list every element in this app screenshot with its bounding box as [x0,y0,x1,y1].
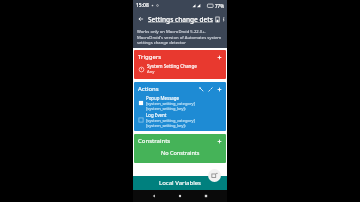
button[interactable]: Back [149,191,159,201]
button[interactable]: Save [213,15,222,24]
button[interactable]: List [223,15,224,24]
staticText: [system_setting_category] [146,101,195,106]
staticText: Constraints [138,137,171,145]
staticText: Popup Message [146,95,179,101]
staticText: No Constraints [161,149,200,156]
staticText: Works only on MacroDroid 5.22.0+. MacroD… [137,29,223,45]
button[interactable]: Actions [134,82,226,131]
staticText: 15:08 [136,2,149,9]
button[interactable]: Local Variables [133,176,227,190]
button[interactable]: Recents [201,191,211,201]
button[interactable]: Add trigger [215,53,223,61]
button[interactable]: Log Event [138,112,223,128]
staticText: System Setting Change [147,63,197,69]
staticText: Triggers [138,53,162,61]
button[interactable]: Configure [197,85,205,93]
button[interactable]: Triggers [134,50,226,79]
staticText: 77% [215,3,224,9]
staticText: Local Variables [159,179,201,187]
staticText: Settings change dets [148,15,213,24]
staticText: Log Event [146,112,167,118]
button[interactable]: Popup Message [138,95,223,111]
button[interactable]: Add action [215,85,223,93]
button[interactable]: System Setting Change [138,63,222,75]
staticText: [system_setting_key]: [system_setting_va… [146,123,223,128]
staticText: [system_setting_key]: [system_setting_va… [146,106,223,111]
button[interactable]: Add macro [208,169,221,182]
button[interactable]: Add constraint [215,137,223,145]
staticText: Any [147,69,155,75]
button[interactable]: Constraints [134,134,226,163]
button[interactable]: Home [175,191,185,201]
button[interactable]: Back [136,14,146,24]
staticText: [system_setting_category] [146,118,195,123]
staticText: Actions [138,85,159,93]
button[interactable]: Expand [206,85,214,93]
